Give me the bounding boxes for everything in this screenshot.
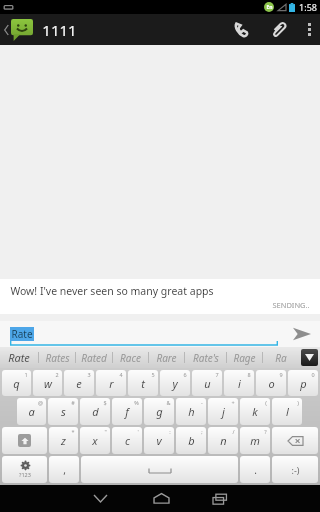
button[interactable]: Rate's bbox=[185, 347, 226, 368]
button[interactable]: Rate bbox=[0, 321, 284, 347]
button[interactable]: k bbox=[240, 398, 270, 425]
staticText: m bbox=[250, 433, 260, 448]
button[interactable]: Race bbox=[113, 347, 148, 368]
button[interactable]: Navigate up bbox=[2, 19, 35, 41]
button[interactable]: n bbox=[208, 427, 238, 454]
staticText: e bbox=[76, 376, 82, 391]
staticText: Wow! I've never seen so many great apps bbox=[10, 284, 214, 298]
button[interactable]: j bbox=[208, 398, 238, 425]
staticText: k bbox=[252, 404, 258, 419]
button[interactable]: s bbox=[48, 398, 78, 425]
button[interactable]: Space bbox=[81, 456, 238, 483]
staticText: t bbox=[141, 376, 145, 391]
staticText: f bbox=[125, 404, 129, 419]
button[interactable]: r bbox=[96, 370, 126, 396]
staticText: n bbox=[220, 433, 227, 448]
button[interactable]: More options bbox=[298, 14, 320, 45]
button[interactable]: Attach bbox=[260, 14, 298, 45]
button[interactable]: Symbols and settings bbox=[2, 456, 47, 483]
staticText: c bbox=[125, 433, 130, 448]
staticText: a bbox=[28, 404, 35, 419]
staticText: $ bbox=[103, 399, 107, 406]
staticText: p bbox=[300, 376, 307, 391]
button[interactable]: Rates bbox=[39, 347, 75, 368]
button[interactable]: c bbox=[112, 427, 142, 454]
staticText: z bbox=[61, 433, 66, 448]
button[interactable]: Rate bbox=[0, 347, 38, 368]
button[interactable]: l bbox=[272, 398, 302, 425]
staticText: Rate bbox=[8, 350, 30, 365]
staticText: # bbox=[71, 399, 75, 406]
staticText: : bbox=[169, 428, 171, 435]
button[interactable]: Hide keyboard bbox=[70, 485, 131, 512]
staticText: 4 bbox=[119, 371, 123, 378]
staticText: ' bbox=[137, 428, 139, 435]
button[interactable]: Recent apps bbox=[191, 485, 251, 512]
button[interactable]: m bbox=[240, 427, 270, 454]
button[interactable]: Wow! I've never seen so many great apps bbox=[0, 279, 320, 321]
staticText: Rated bbox=[81, 351, 107, 365]
staticText: 1 bbox=[24, 371, 28, 378]
staticText: r bbox=[109, 376, 114, 391]
button[interactable]: t bbox=[128, 370, 158, 396]
staticText: & bbox=[166, 399, 171, 406]
staticText: ) bbox=[297, 399, 299, 406]
staticText: En bbox=[266, 4, 273, 11]
staticText: y bbox=[172, 376, 178, 391]
button[interactable]: u bbox=[192, 370, 222, 396]
staticText: :-) bbox=[291, 464, 300, 476]
button[interactable]: g bbox=[144, 398, 174, 425]
button[interactable]: e bbox=[64, 370, 94, 396]
button[interactable]: Rare bbox=[149, 347, 184, 368]
staticText: 1111 bbox=[42, 20, 77, 40]
staticText: Rage bbox=[233, 351, 256, 365]
staticText: Race bbox=[120, 351, 141, 365]
staticText: Ra bbox=[275, 351, 287, 365]
button[interactable]: f bbox=[112, 398, 142, 425]
staticText: 6 bbox=[183, 371, 187, 378]
button[interactable]: z bbox=[49, 427, 78, 454]
button[interactable]: y bbox=[160, 370, 190, 396]
button[interactable]: i bbox=[224, 370, 254, 396]
button[interactable]: Rage bbox=[227, 347, 262, 368]
staticText: * bbox=[71, 428, 75, 435]
staticText: i bbox=[238, 376, 241, 391]
button[interactable]: Home bbox=[131, 485, 191, 512]
staticText: Rate's bbox=[193, 351, 219, 365]
button[interactable]: Shift bbox=[2, 427, 47, 454]
staticText: x bbox=[92, 433, 98, 448]
staticText: SENDING.. bbox=[272, 300, 310, 310]
staticText: ? bbox=[264, 428, 267, 435]
button[interactable]: Backspace bbox=[272, 427, 318, 454]
button[interactable]: d bbox=[80, 398, 110, 425]
staticText: 7 bbox=[215, 371, 219, 378]
button[interactable]: v bbox=[144, 427, 174, 454]
button[interactable]: x bbox=[80, 427, 110, 454]
button[interactable]: Call bbox=[222, 14, 260, 45]
button[interactable]: h bbox=[176, 398, 206, 425]
staticText: o bbox=[268, 376, 275, 391]
button[interactable]: b bbox=[176, 427, 206, 454]
staticText: ( bbox=[265, 399, 267, 406]
button[interactable]: , bbox=[49, 456, 79, 483]
staticText: u bbox=[204, 376, 211, 391]
button[interactable]: More suggestions bbox=[301, 349, 318, 366]
button[interactable]: a bbox=[17, 398, 46, 425]
button[interactable]: p bbox=[288, 370, 318, 396]
staticText: / bbox=[232, 428, 235, 435]
button[interactable]: Send bbox=[284, 321, 320, 347]
button[interactable]: w bbox=[33, 370, 62, 396]
staticText: " bbox=[104, 428, 107, 435]
button[interactable]: Rated bbox=[76, 347, 112, 368]
button[interactable]: Emoticons bbox=[272, 456, 318, 483]
staticText: d bbox=[92, 404, 99, 419]
button[interactable]: . bbox=[240, 456, 270, 483]
button[interactable]: q bbox=[2, 370, 31, 396]
staticText: v bbox=[156, 433, 162, 448]
staticText: @ bbox=[38, 399, 43, 406]
staticText: 9 bbox=[279, 371, 283, 378]
button[interactable]: o bbox=[256, 370, 286, 396]
button[interactable]: Ra bbox=[263, 347, 298, 368]
staticText: b bbox=[188, 433, 195, 448]
staticText: Rates bbox=[45, 351, 70, 365]
